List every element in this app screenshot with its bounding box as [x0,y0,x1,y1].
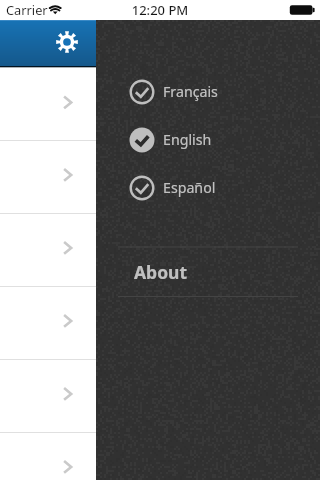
button[interactable]: Español [122,168,302,208]
staticText: Français [163,82,218,101]
staticText: Español [163,178,216,197]
button[interactable] [0,68,320,140]
button[interactable] [0,213,320,286]
button[interactable] [0,432,320,480]
button[interactable]: About [134,260,188,284]
button[interactable] [0,286,320,359]
staticText: 12:20 PM [0,1,320,19]
button[interactable] [0,140,320,213]
staticText: About [134,260,188,284]
staticText: Carrier [6,1,48,18]
button[interactable]: Settings [56,31,78,53]
button[interactable]: Français [122,72,302,112]
button[interactable]: English [122,120,302,160]
staticText: English [163,130,212,149]
button[interactable] [0,359,320,432]
